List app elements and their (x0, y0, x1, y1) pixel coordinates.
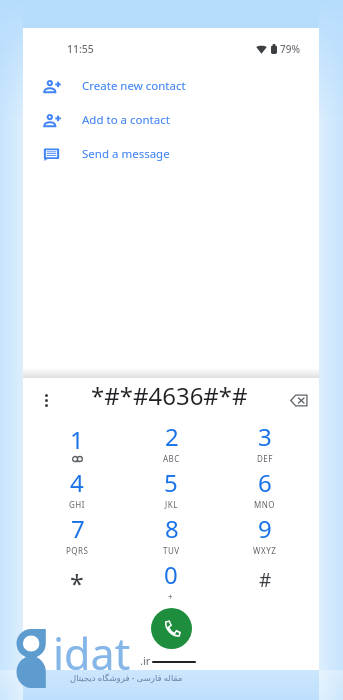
button[interactable]: 4 (30, 466, 124, 512)
staticText: 6 (258, 466, 272, 499)
staticText: + (168, 591, 174, 602)
button[interactable]: # (218, 558, 312, 604)
button[interactable]: Backspace (286, 387, 312, 413)
staticText: TUV (163, 545, 180, 556)
button[interactable]: 2 (124, 420, 218, 466)
staticText: 4 (70, 466, 84, 499)
staticText: WXYZ (253, 545, 277, 556)
staticText: 3 (258, 420, 272, 453)
staticText: PQRS (66, 545, 89, 556)
staticText: 79% (280, 42, 300, 56)
staticText: *#*#4636#*# (91, 379, 248, 412)
staticText: 2 (165, 420, 179, 453)
staticText: 11:55 (67, 42, 94, 56)
staticText: 8 (165, 512, 179, 545)
button[interactable]: Send a message (23, 137, 319, 171)
staticText: Create new contact (82, 78, 186, 94)
button[interactable]: Add to a contact (23, 103, 319, 137)
staticText: 7 (71, 512, 85, 545)
staticText: ABC (163, 453, 180, 464)
staticText: 9 (258, 512, 272, 545)
staticText: DEF (257, 453, 273, 464)
staticText: JKL (165, 499, 178, 510)
button[interactable]: 7 (30, 512, 124, 558)
button[interactable]: Create new contact (23, 69, 319, 103)
staticText: Send a message (82, 146, 170, 162)
button[interactable]: 5 (124, 466, 218, 512)
button[interactable]: * (30, 558, 124, 604)
staticText: 0 (164, 558, 178, 591)
staticText: GHI (69, 499, 85, 510)
staticText: * (70, 566, 84, 600)
staticText: 5 (164, 466, 178, 499)
staticText: idat (53, 624, 131, 683)
staticText: .ir (140, 653, 151, 668)
staticText: # (259, 567, 272, 593)
button[interactable]: 9 (218, 512, 312, 558)
button[interactable]: 6 (218, 466, 312, 512)
staticText: Add to a contact (82, 112, 170, 128)
button[interactable]: 1 (30, 420, 124, 466)
button[interactable]: 8 (124, 512, 218, 558)
button[interactable]: Call (151, 608, 192, 649)
button[interactable]: More options (34, 388, 58, 412)
staticText: 1 (70, 423, 84, 456)
staticText: MNO (254, 499, 276, 510)
button[interactable]: 3 (218, 420, 312, 466)
staticText: مقاله فارسی - فروشگاه دیجیتال (70, 672, 183, 684)
button[interactable]: 0 (124, 558, 218, 604)
